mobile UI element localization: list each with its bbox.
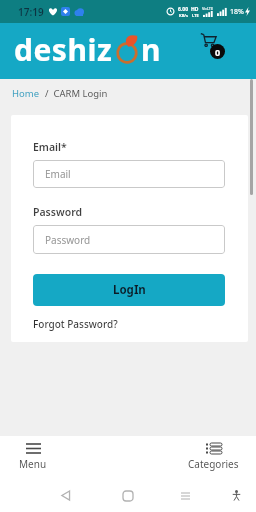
button[interactable] — [123, 491, 133, 501]
staticText: Email — [45, 167, 71, 181]
staticText: Password — [33, 205, 83, 219]
button[interactable] — [232, 490, 241, 501]
button[interactable]: LogIn — [33, 274, 225, 306]
staticText: / CARM Login — [40, 87, 108, 100]
staticText: Home — [12, 87, 40, 100]
button[interactable] — [61, 491, 70, 500]
button[interactable]: 0 — [193, 31, 227, 59]
button[interactable]: deshiz — [14, 31, 161, 72]
staticText: LogIn — [113, 282, 146, 298]
staticText: 17:19 — [18, 5, 44, 19]
staticText: Categories — [188, 457, 239, 471]
button[interactable]: Categories — [188, 443, 239, 471]
staticText: Menu — [19, 457, 47, 471]
button[interactable]: Email — [33, 160, 225, 188]
staticText: KB/s — [179, 13, 188, 18]
staticText: 0 — [215, 46, 221, 58]
button[interactable] — [181, 492, 190, 500]
staticText: Forgot Password? — [33, 317, 118, 331]
button[interactable]: Forgot Password? — [33, 316, 118, 331]
staticText: Email* — [33, 140, 67, 154]
staticText: deshiz — [14, 29, 113, 70]
staticText: LTE — [192, 13, 199, 18]
button[interactable]: Menu — [19, 443, 47, 471]
staticText: HD — [191, 6, 199, 13]
button[interactable]: Password — [33, 225, 225, 254]
staticText: VoLTE — [202, 6, 214, 11]
button[interactable]: Home — [12, 87, 108, 100]
staticText: 6.00 — [178, 6, 188, 13]
staticText: 18% — [230, 7, 244, 17]
staticText: n — [141, 29, 161, 70]
staticText: Password — [45, 233, 91, 247]
